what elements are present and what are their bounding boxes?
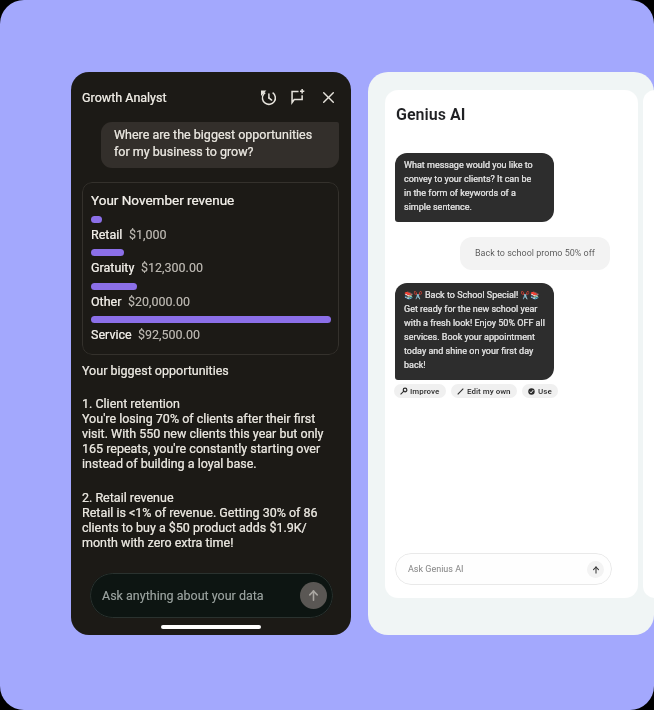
staticText: Ask Genius AI — [408, 564, 464, 575]
button[interactable]: Send message — [300, 582, 327, 609]
staticText: Improve — [410, 387, 440, 396]
staticText: Other — [91, 294, 122, 309]
staticText: Your November revenue — [91, 192, 235, 208]
button[interactable]: Ask anything about your data — [90, 573, 333, 618]
staticText: What message would you like to convey to… — [404, 160, 538, 213]
staticText: $12,300.00 — [141, 260, 203, 275]
button[interactable]: New chat — [285, 84, 311, 110]
staticText: Service — [91, 327, 132, 342]
button[interactable]: Send message — [587, 561, 604, 578]
staticText: Retail — [91, 227, 123, 242]
staticText: Gratuity — [91, 260, 135, 275]
staticText: $1,000 — [129, 227, 167, 242]
staticText: Where are the biggest opportunities for … — [114, 127, 329, 159]
staticText: You're losing 70% of clients after their… — [82, 411, 334, 471]
staticText: Ask anything about your data — [102, 588, 264, 603]
button[interactable]: Improve — [394, 384, 446, 398]
button[interactable]: History — [255, 84, 281, 110]
staticText: Your biggest opportunities — [82, 363, 229, 378]
staticText: 📚✂️ Back to School Special! ✂️📚 Get read… — [404, 290, 546, 371]
button[interactable]: Ask Genius AI — [395, 553, 612, 585]
staticText: Back to school promo 50% off — [475, 248, 595, 259]
staticText: Use — [538, 387, 552, 396]
button[interactable]: Use — [522, 384, 558, 398]
staticText: 1. Client retention — [82, 396, 180, 411]
staticText: $20,000.00 — [128, 294, 190, 309]
staticText: Genius AI — [396, 105, 466, 124]
staticText: 2. Retail revenue — [82, 490, 174, 505]
staticText: Edit my own — [467, 387, 511, 396]
staticText: Growth Analyst — [82, 90, 167, 105]
staticText: Retail is <1% of revenue. Getting 30% of… — [82, 505, 334, 550]
button[interactable]: Edit my own — [451, 384, 517, 398]
staticText: $92,500.00 — [138, 327, 200, 342]
button[interactable]: Close — [315, 84, 341, 110]
